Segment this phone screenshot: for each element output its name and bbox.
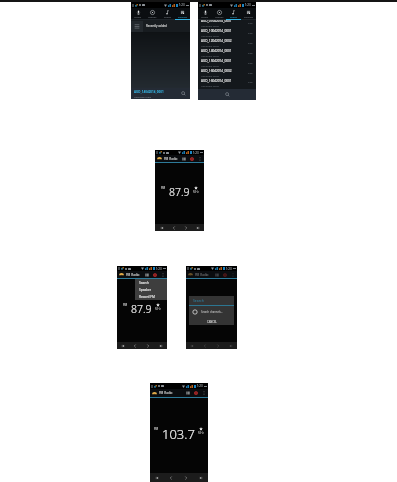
button[interactable]: Record [221, 271, 229, 278]
staticText: Songs [230, 15, 237, 18]
button[interactable]: Record FM [135, 293, 167, 300]
button[interactable]: Home [141, 342, 154, 349]
staticText: 0:06 [248, 42, 253, 45]
button[interactable]: Songs [160, 8, 175, 19]
button[interactable]: Search [135, 279, 167, 286]
button[interactable]: Artists [198, 8, 212, 19]
staticText: Unknown artist [201, 44, 219, 47]
button[interactable]: AUD_14042014_0001 [134, 88, 187, 99]
button[interactable]: Channel list [180, 155, 188, 162]
staticText: 1:23 [245, 3, 251, 7]
button[interactable]: Playlists [241, 8, 256, 19]
button[interactable]: Channel list [213, 271, 221, 278]
button[interactable]: Home [180, 224, 192, 231]
button[interactable]: AUD_16042014_0002 [201, 68, 253, 78]
button[interactable]: Previous [117, 342, 129, 349]
button[interactable]: Previous [186, 342, 198, 349]
staticText: 1:23 [197, 384, 203, 388]
button[interactable]: Search [180, 90, 187, 97]
button[interactable]: More options [159, 271, 167, 278]
button[interactable]: Record [151, 271, 159, 278]
button[interactable]: Back [168, 224, 180, 231]
staticText: AUD_16042014_0002 [201, 69, 232, 73]
button[interactable]: Channel list [184, 389, 192, 397]
button[interactable]: AUD_14042014_0001 [201, 48, 253, 58]
button[interactable]: More options [229, 271, 237, 278]
staticText: FM [161, 186, 166, 190]
button[interactable]: Back [198, 342, 211, 349]
button[interactable]: Previous [150, 473, 164, 482]
staticText: Unknown artist [201, 64, 219, 67]
staticText: Unknown artist [201, 74, 219, 77]
button[interactable]: Recently added [131, 20, 190, 32]
button[interactable]: AUD_10042014_0001 [201, 28, 253, 38]
button[interactable]: AUD_15042014_0001 [201, 58, 253, 68]
staticText: Unknown artist [201, 84, 219, 87]
button[interactable]: Speaker [135, 286, 167, 293]
staticText: AUD_07042014_0001 [201, 20, 232, 23]
staticText: Playlists [178, 15, 188, 18]
staticText: FM Radio [126, 273, 140, 277]
staticText: Recently added [146, 24, 167, 28]
staticText: AUD_14042014_0001 [134, 90, 164, 94]
staticText: AUD_10042014_0001 [201, 29, 232, 33]
button[interactable]: Channel list [143, 271, 151, 278]
button[interactable]: Next [154, 342, 167, 349]
staticText: 1:23 [156, 267, 162, 271]
button[interactable]: AUD_07042014_0001 [201, 20, 253, 28]
staticText: 0:06 [248, 22, 253, 25]
staticText: Search [193, 298, 204, 303]
staticText: FM [123, 303, 128, 307]
staticText: Artists [201, 15, 209, 18]
staticText: Unknown artist [201, 54, 219, 57]
staticText: Albums [148, 15, 157, 18]
staticText: 1:23 [226, 267, 232, 271]
button[interactable]: Playlists [175, 8, 190, 19]
button[interactable]: Next [193, 473, 208, 482]
staticText: FM [154, 427, 159, 431]
button[interactable]: Previous [155, 224, 168, 231]
button[interactable]: More options [200, 389, 208, 397]
staticText: MHz [198, 431, 204, 435]
staticText: Speaker [139, 288, 152, 292]
staticText: 1:23 [179, 3, 185, 7]
button[interactable]: Next [192, 224, 204, 231]
button[interactable]: Albums [212, 8, 226, 19]
button[interactable]: More options [196, 155, 204, 162]
staticText: Search channels... [201, 310, 223, 314]
staticText: Record FM [139, 295, 155, 299]
staticText: Artists [134, 15, 142, 18]
button[interactable]: Home [178, 473, 193, 482]
button[interactable]: Home [211, 342, 224, 349]
staticText: Unknown artist [201, 34, 219, 37]
staticText: Songs [164, 15, 171, 18]
staticText: 1:23 [193, 151, 199, 155]
staticText: 87.9 [131, 302, 152, 316]
button[interactable]: CANCEL [189, 318, 234, 325]
staticText: Albums [215, 15, 224, 18]
staticText: AUD_14042014_0001 [201, 49, 232, 53]
staticText: Search [139, 281, 150, 285]
staticText: MHz [193, 190, 199, 194]
button[interactable]: Search [198, 89, 256, 100]
button[interactable]: Record [188, 155, 196, 162]
button[interactable]: Artists [131, 8, 145, 19]
staticText: AUD_16042014_0001 [201, 79, 232, 83]
button[interactable]: Record [192, 389, 200, 397]
staticText: 0:06 [248, 32, 253, 35]
button[interactable]: Next [224, 342, 237, 349]
staticText: FM Radio [164, 157, 178, 161]
staticText: FM Radio [195, 273, 209, 277]
staticText: Playlists [244, 15, 254, 18]
staticText: Unknown artist [201, 24, 219, 27]
button[interactable]: Back [129, 342, 141, 349]
button[interactable]: AUD_12042014_0002 [201, 38, 253, 48]
staticText: CANCEL [207, 320, 217, 324]
button[interactable]: Songs [226, 8, 241, 19]
staticText: 87.9 [169, 185, 190, 199]
button[interactable]: Back [164, 473, 178, 482]
button[interactable]: AUD_16042014_0001 [201, 78, 253, 87]
staticText: 0:06 [248, 81, 253, 84]
staticText: FM Radio [159, 391, 173, 395]
button[interactable]: Albums [145, 8, 160, 19]
